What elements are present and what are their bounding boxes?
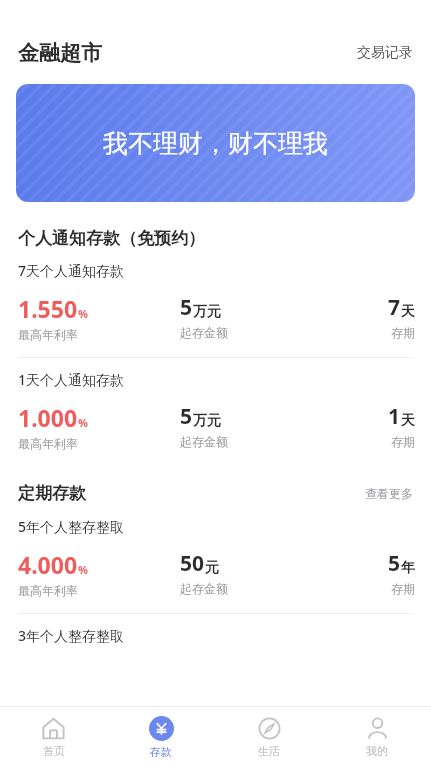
- staticText: 5: [388, 549, 401, 578]
- staticText: 存款: [150, 745, 172, 759]
- staticText: 首页: [43, 744, 65, 758]
- staticText: 7: [388, 293, 401, 322]
- button[interactable]: 交易记录: [355, 38, 415, 68]
- staticText: 存期: [391, 325, 415, 340]
- staticText: 元: [205, 559, 219, 577]
- staticText: 起存金额: [180, 434, 228, 449]
- staticText: 1天个人通知存款: [18, 370, 125, 389]
- staticText: 存期: [391, 434, 415, 449]
- staticText: 我的: [366, 744, 388, 758]
- staticText: 4.000: [18, 549, 78, 580]
- button[interactable]: 7天个人通知存款: [0, 261, 431, 357]
- staticText: 3年个人整存整取: [18, 626, 125, 645]
- staticText: 起存金额: [180, 325, 228, 340]
- staticText: %: [78, 306, 88, 321]
- staticText: 起存金额: [180, 581, 228, 596]
- button[interactable]: 5年个人整存整取: [0, 517, 431, 613]
- staticText: 交易记录: [357, 44, 413, 62]
- staticText: 万元: [193, 303, 221, 321]
- other: 生活: [258, 717, 281, 740]
- staticText: 1: [388, 402, 401, 431]
- staticText: 50: [180, 549, 205, 578]
- staticText: 1.550: [18, 293, 78, 324]
- staticText: 天: [401, 303, 415, 321]
- staticText: 最高年利率: [18, 583, 78, 598]
- staticText: 查看更多: [365, 486, 413, 501]
- button[interactable]: 生活: [215, 706, 323, 768]
- staticText: 5: [180, 402, 193, 431]
- staticText: 年: [401, 559, 415, 577]
- staticText: 1.000: [18, 402, 78, 433]
- staticText: 7天个人通知存款: [18, 261, 125, 280]
- other: 我的: [366, 717, 389, 740]
- button[interactable]: 我不理财，财不理我: [16, 84, 415, 202]
- button[interactable]: 存款: [107, 706, 215, 768]
- staticText: 生活: [258, 744, 280, 758]
- staticText: 万元: [193, 412, 221, 430]
- staticText: 个人通知存款（免预约）: [18, 228, 205, 249]
- staticText: %: [78, 562, 88, 577]
- other: 首页: [42, 717, 65, 740]
- button[interactable]: 查看更多: [363, 482, 415, 505]
- staticText: 5年个人整存整取: [18, 517, 125, 536]
- staticText: 我不理财，财不理我: [103, 128, 328, 159]
- other: 存款: [149, 716, 174, 741]
- button[interactable]: 我的: [323, 706, 431, 768]
- staticText: 最高年利率: [18, 327, 78, 342]
- button[interactable]: 首页: [0, 706, 107, 768]
- staticText: %: [78, 415, 88, 430]
- staticText: 5: [180, 293, 193, 322]
- staticText: 金融超市: [18, 40, 102, 66]
- staticText: 存期: [391, 581, 415, 596]
- button[interactable]: 1天个人通知存款: [0, 357, 431, 466]
- staticText: 最高年利率: [18, 436, 78, 451]
- staticText: 天: [401, 412, 415, 430]
- staticText: 定期存款: [18, 483, 86, 504]
